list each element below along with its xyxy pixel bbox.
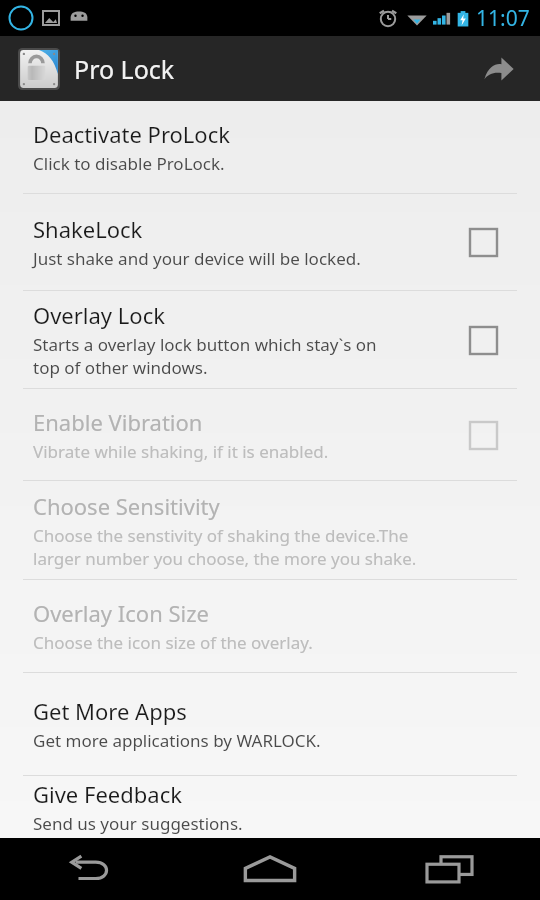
button[interactable]: Overlay Lock <box>0 291 540 388</box>
staticText: Overlay Icon Size <box>33 598 209 628</box>
button[interactable]: ShakeLock <box>0 194 540 290</box>
staticText: Choose the icon size of the overlay. <box>33 631 313 654</box>
staticText: Just shake and your device will be locke… <box>33 247 361 270</box>
button[interactable]: Deactivate ProLock <box>0 101 540 193</box>
button[interactable]: Give Feedback <box>0 776 540 838</box>
staticText: Pro Lock <box>74 52 175 86</box>
button[interactable]: Recent apps <box>390 838 510 900</box>
staticText: Vibrate while shaking, if it is enabled. <box>33 440 329 463</box>
staticText: Choose the senstivity of shaking the dev… <box>33 524 417 570</box>
button[interactable]: Get More Apps <box>0 673 540 775</box>
staticText: Get More Apps <box>33 696 187 726</box>
button[interactable]: Enable Vibration toggle <box>456 408 510 462</box>
staticText: Deactivate ProLock <box>33 119 230 149</box>
staticText: Starts a overlay lock button which stay`… <box>33 333 377 379</box>
button[interactable]: Home <box>210 838 330 900</box>
staticText: Overlay Lock <box>33 300 165 330</box>
button[interactable]: Back <box>30 838 150 900</box>
staticText: 11:07 <box>476 4 530 33</box>
staticText: Get more applications by WARLOCK. <box>33 729 321 752</box>
staticText: ShakeLock <box>33 214 143 244</box>
button[interactable]: Overlay Lock toggle <box>456 313 510 367</box>
button[interactable]: Share <box>470 41 526 97</box>
staticText: Give Feedback <box>33 779 182 809</box>
button[interactable]: ShakeLock toggle <box>456 215 510 269</box>
button[interactable]: Enable Vibration <box>0 389 540 480</box>
button[interactable]: Overlay Icon Size <box>0 580 540 672</box>
staticText: Choose Sensitivity <box>33 491 220 521</box>
staticText: Click to disable ProLock. <box>33 152 225 175</box>
staticText: Enable Vibration <box>33 407 203 437</box>
button[interactable]: Choose Sensitivity <box>0 481 540 579</box>
staticText: Send us your suggestions. <box>33 812 243 835</box>
